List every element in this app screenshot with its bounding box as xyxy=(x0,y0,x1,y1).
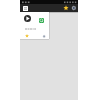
button[interactable]: Play xyxy=(24,15,31,22)
button[interactable]: Rate xyxy=(24,32,30,38)
button[interactable]: Message xyxy=(39,18,44,23)
button[interactable]: Favourites xyxy=(62,4,70,12)
button[interactable]: Settings xyxy=(70,4,78,12)
button[interactable]: More options xyxy=(41,33,47,39)
button[interactable]: Open navigation xyxy=(23,6,28,11)
button[interactable] xyxy=(20,12,49,39)
